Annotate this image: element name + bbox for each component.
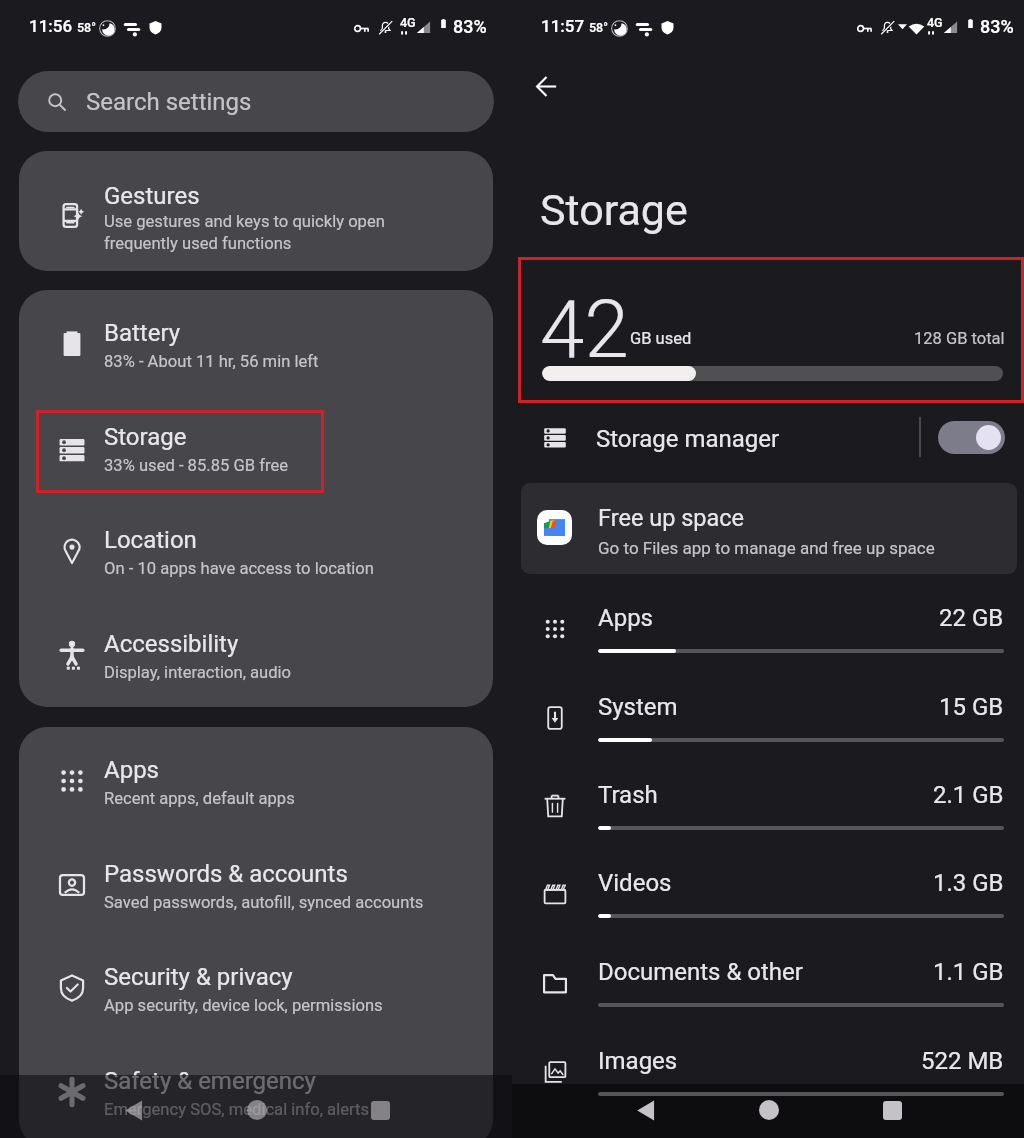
staticText: Videos xyxy=(598,869,672,897)
staticText: Display, interaction, audio xyxy=(104,663,292,682)
staticText: 11:56 xyxy=(29,16,73,36)
staticText: Emergency SOS, medical info, alerts xyxy=(104,1100,369,1119)
staticText: Apps xyxy=(104,756,159,784)
button[interactable]: Free up space xyxy=(521,483,1017,574)
button[interactable]: Security & privacy xyxy=(19,934,493,1038)
staticText: 42 xyxy=(540,283,629,377)
staticText: Free up space xyxy=(598,504,745,532)
staticText: 83% xyxy=(980,16,1014,37)
staticText: Safety & emergency xyxy=(104,1067,316,1095)
button[interactable]: Battery xyxy=(19,290,493,394)
staticText: 1.3 GB xyxy=(933,869,1004,897)
staticText: Saved passwords, autofill, synced accoun… xyxy=(104,893,424,912)
button[interactable]: Location xyxy=(19,497,493,601)
staticText: 128 GB total xyxy=(914,329,1005,348)
button[interactable]: Storage xyxy=(19,394,493,498)
staticText: 22 GB xyxy=(939,604,1004,632)
staticText: Accessibility xyxy=(104,630,239,658)
staticText: 522 MB xyxy=(921,1047,1004,1075)
staticText: Storage manager xyxy=(596,425,780,453)
button[interactable]: Storage manager toggle xyxy=(938,421,1005,454)
button[interactable]: Recent apps xyxy=(872,1090,912,1130)
staticText: Storage xyxy=(540,185,688,235)
staticText: 1.1 GB xyxy=(933,958,1004,986)
staticText: Location xyxy=(104,526,197,554)
staticText: 15 GB xyxy=(939,693,1004,721)
staticText: Trash xyxy=(598,781,658,809)
staticText: Search settings xyxy=(86,88,252,116)
staticText: On - 10 apps have access to location xyxy=(104,559,374,578)
staticText: Go to Files app to manage and free up sp… xyxy=(598,538,935,558)
staticText: 4G xyxy=(927,15,943,30)
staticText: 58° xyxy=(589,20,608,35)
staticText: Gestures xyxy=(104,182,200,210)
staticText: 58° xyxy=(77,20,96,35)
button[interactable]: Gestures xyxy=(19,151,493,271)
staticText: 11:57 xyxy=(541,16,585,36)
button[interactable]: Home xyxy=(237,1090,277,1130)
staticText: GB used xyxy=(630,329,692,348)
button[interactable]: Documents & other xyxy=(512,950,1024,1038)
staticText: 4G xyxy=(400,15,416,30)
staticText: Recent apps, default apps xyxy=(104,789,295,808)
staticText: Use gestures and keys to quickly open fr… xyxy=(104,212,385,253)
button[interactable]: Apps xyxy=(512,596,1024,684)
staticText: Storage xyxy=(104,423,187,451)
staticText: Battery xyxy=(104,319,181,347)
button[interactable]: Back xyxy=(626,1090,666,1130)
button[interactable]: Apps xyxy=(19,727,493,831)
button[interactable]: Accessibility xyxy=(19,601,493,705)
button[interactable]: Images xyxy=(512,1039,1024,1127)
staticText: Security & privacy xyxy=(104,963,293,991)
button[interactable]: Back xyxy=(114,1090,154,1130)
button[interactable]: Back xyxy=(518,58,574,114)
button[interactable]: Passwords & accounts xyxy=(19,831,493,935)
button[interactable]: Recent apps xyxy=(360,1090,400,1130)
staticText: System xyxy=(598,693,678,721)
staticText: 2.1 GB xyxy=(933,781,1004,809)
staticText: Documents & other xyxy=(598,958,803,986)
staticText: App security, device lock, permissions xyxy=(104,996,383,1015)
staticText: Apps xyxy=(598,604,653,632)
button[interactable]: Storage manager xyxy=(512,410,1024,470)
button[interactable]: Videos xyxy=(512,861,1024,949)
staticText: Passwords & accounts xyxy=(104,860,348,888)
button[interactable]: Safety & emergency xyxy=(19,1038,493,1138)
button[interactable]: Search settings xyxy=(18,71,494,132)
button[interactable]: Trash xyxy=(512,773,1024,861)
button[interactable]: System xyxy=(512,685,1024,773)
button[interactable]: Home xyxy=(749,1090,789,1130)
staticText: Images xyxy=(598,1047,678,1075)
staticText: 83% - About 11 hr, 56 min left xyxy=(104,352,319,371)
staticText: 33% used - 85.85 GB free xyxy=(104,456,288,475)
staticText: 83% xyxy=(453,16,487,37)
